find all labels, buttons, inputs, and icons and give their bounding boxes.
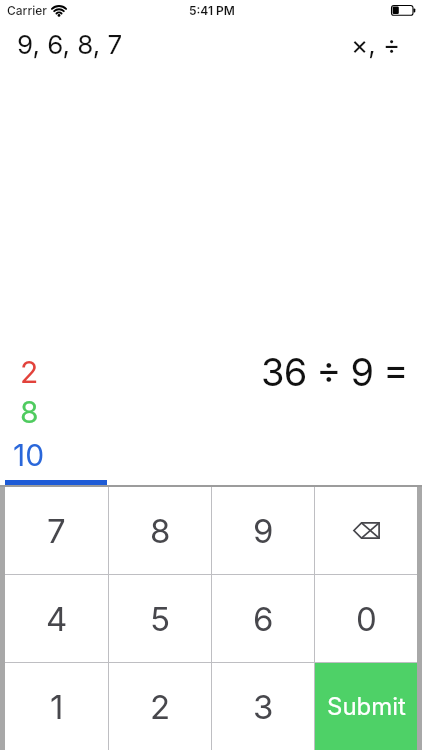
- staticText: 8: [20, 394, 39, 430]
- button[interactable]: [315, 487, 417, 574]
- staticText: ×, ÷: [351, 29, 401, 60]
- button[interactable]: Submit: [315, 663, 417, 750]
- staticText: Submit: [327, 692, 406, 721]
- button[interactable]: 1: [5, 663, 108, 750]
- staticText: 36 ÷ 9 =: [261, 349, 408, 395]
- button[interactable]: 6: [212, 575, 314, 662]
- staticText: 7: [47, 511, 66, 551]
- staticText: 0: [356, 599, 377, 639]
- staticText: 9: [253, 511, 274, 551]
- button[interactable]: 2: [109, 663, 211, 750]
- staticText: 2: [20, 354, 39, 390]
- staticText: 6: [253, 599, 274, 639]
- button[interactable]: 5: [109, 575, 211, 662]
- staticText: 4: [46, 599, 68, 639]
- button[interactable]: 7: [5, 487, 108, 574]
- button[interactable]: 8: [109, 487, 211, 574]
- button[interactable]: 4: [5, 575, 108, 662]
- staticText: 5:41 PM: [189, 3, 235, 18]
- staticText: 3: [253, 687, 274, 727]
- button[interactable]: 0: [315, 575, 417, 662]
- staticText: 10: [13, 437, 45, 473]
- button[interactable]: 3: [212, 663, 314, 750]
- staticText: Carrier: [7, 3, 47, 18]
- staticText: 2: [150, 687, 171, 727]
- staticText: 5: [150, 599, 171, 639]
- staticText: 8: [150, 511, 171, 551]
- staticText: 9, 6, 8, 7: [17, 29, 123, 60]
- staticText: 1: [50, 687, 64, 727]
- button[interactable]: 9: [212, 487, 314, 574]
